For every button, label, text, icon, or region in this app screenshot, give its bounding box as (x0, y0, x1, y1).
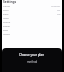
staticText: Wi-Fi (3, 8, 9, 11)
staticText: Apps (3, 16, 9, 19)
staticText: Power (3, 24, 11, 27)
staticText: About (3, 32, 10, 35)
button[interactable]: About (2, 31, 62, 35)
staticText: Files (3, 28, 8, 31)
staticText: Account (51, 4, 61, 7)
button[interactable]: Power (2, 23, 62, 27)
button[interactable]: Files (2, 27, 62, 31)
staticText: Sound (3, 20, 11, 23)
staticText: Off (57, 12, 61, 15)
button[interactable]: Data (2, 11, 62, 15)
staticText: Name (3, 4, 10, 7)
button[interactable]: Wi-Fi (2, 7, 62, 11)
staticText: Settings (3, 0, 17, 4)
staticText: method (27, 60, 38, 64)
button[interactable]: Sound (2, 19, 62, 23)
staticText: Data (3, 12, 9, 15)
staticText: On (57, 8, 61, 11)
staticText: Choose your plan (19, 53, 45, 57)
button[interactable]: Name (2, 4, 62, 7)
button[interactable]: Apps (2, 15, 62, 19)
